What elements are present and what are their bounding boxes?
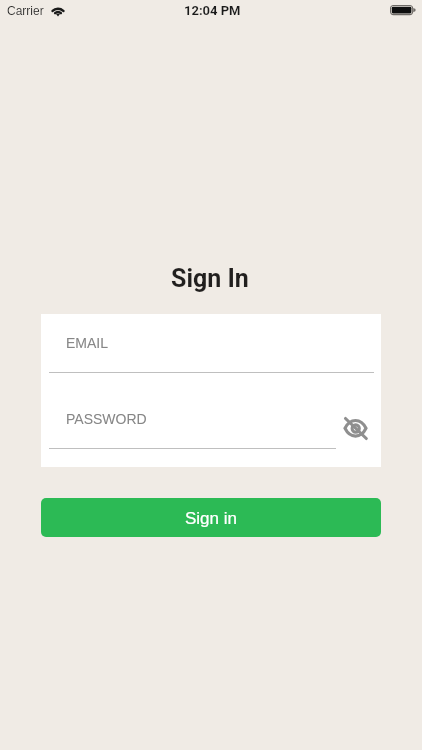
button[interactable]: PASSWORD bbox=[49, 402, 335, 449]
button[interactable]: Show password bbox=[341, 413, 369, 441]
staticText: Sign In bbox=[171, 264, 249, 293]
staticText: Sign in bbox=[185, 509, 237, 528]
button[interactable]: EMAIL bbox=[49, 326, 373, 373]
staticText: EMAIL bbox=[66, 335, 109, 351]
staticText: PASSWORD bbox=[66, 411, 147, 427]
staticText: Carrier bbox=[7, 4, 44, 17]
staticText: 12:04 PM bbox=[184, 3, 241, 18]
button[interactable]: Sign in bbox=[41, 498, 381, 537]
